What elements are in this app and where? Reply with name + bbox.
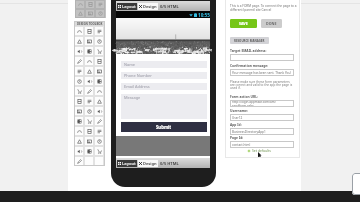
button[interactable]: Set defaults bbox=[247, 148, 271, 153]
button[interactable]: DONE bbox=[261, 19, 282, 28]
staticText: Target EMAIL address: bbox=[230, 48, 267, 52]
button[interactable]: tool 4 bbox=[84, 36, 94, 46]
button[interactable]: tool 9 bbox=[74, 56, 84, 66]
button[interactable]: tool 22 bbox=[84, 96, 94, 106]
button[interactable]: tool 5 bbox=[94, 36, 104, 46]
button[interactable]: tool 36 bbox=[74, 146, 84, 156]
button[interactable]: tool 32 bbox=[94, 126, 104, 136]
staticText: Username: bbox=[230, 108, 248, 112]
button[interactable]: tool 31 bbox=[84, 126, 94, 136]
staticText: Name bbox=[124, 62, 135, 67]
button[interactable]: tool bbox=[85, 9, 95, 18]
button[interactable]: tool 17 bbox=[94, 76, 104, 86]
button[interactable]: tool 35 bbox=[94, 136, 104, 146]
staticText: DESIGN TOOLBOX bbox=[77, 22, 103, 26]
staticText: Message bbox=[124, 95, 141, 100]
button[interactable] bbox=[230, 54, 294, 61]
staticText: Form action URL: bbox=[230, 94, 258, 98]
button[interactable]: tool 1 bbox=[84, 26, 94, 36]
button[interactable]: tool 41 bbox=[94, 156, 104, 166]
button[interactable]: Your message has been sent. Thank You! bbox=[230, 69, 294, 76]
button[interactable]: tool 33 bbox=[74, 136, 84, 146]
staticText: Layout bbox=[122, 4, 136, 9]
button[interactable]: SAVE bbox=[230, 19, 257, 28]
button[interactable]: tool bbox=[95, 0, 105, 9]
staticText: 0/5 HTML bbox=[160, 4, 179, 9]
button[interactable]: tool 3 bbox=[74, 36, 84, 46]
button[interactable]: RESOURCE MANAGER bbox=[230, 37, 269, 44]
button[interactable]: tool 24 bbox=[74, 106, 84, 116]
button[interactable]: tool 16 bbox=[84, 76, 94, 86]
staticText: Layout bbox=[122, 161, 136, 166]
button[interactable]: User12 bbox=[230, 114, 294, 121]
staticText: DONE bbox=[266, 21, 277, 26]
button[interactable]: tool 40 bbox=[84, 156, 94, 166]
button[interactable]: tool 25 bbox=[84, 106, 94, 116]
staticText: Confirmation message: bbox=[230, 63, 269, 67]
staticText: BusinessDirectoryApp1 bbox=[232, 130, 266, 134]
button[interactable]: tool 38 bbox=[94, 146, 104, 156]
button[interactable]: tool 20 bbox=[94, 86, 104, 96]
button[interactable]: Submit bbox=[121, 122, 207, 132]
button[interactable]: tool 26 bbox=[94, 106, 104, 116]
staticText: SAVE bbox=[239, 21, 248, 26]
button[interactable]: tool 12 bbox=[74, 66, 84, 76]
button[interactable]: BusinessDirectoryApp1 bbox=[230, 128, 294, 135]
button[interactable]: tool 13 bbox=[84, 66, 94, 76]
button[interactable]: tool 37 bbox=[84, 146, 94, 156]
button[interactable]: tool 10 bbox=[84, 56, 94, 66]
button[interactable]: tool 29 bbox=[94, 116, 104, 126]
button[interactable]: tool 27 bbox=[74, 116, 84, 126]
staticText: RESOURCE MANAGER bbox=[234, 39, 265, 43]
button[interactable]: tool bbox=[85, 0, 95, 9]
button[interactable]: tool bbox=[75, 9, 85, 18]
staticText: Page Id: bbox=[230, 135, 244, 139]
staticText: 0/5 HTML bbox=[160, 161, 179, 166]
staticText: Phone Number bbox=[124, 73, 152, 78]
staticText: Please make sure these form parameters a… bbox=[230, 80, 300, 90]
button[interactable]: tool 30 bbox=[74, 126, 84, 136]
staticText: User12 bbox=[232, 116, 243, 120]
staticText: Submit bbox=[156, 124, 172, 130]
button[interactable]: Email Address bbox=[121, 83, 207, 90]
button[interactable]: Phone Number bbox=[121, 72, 207, 79]
button[interactable]: tool 14 bbox=[94, 66, 104, 76]
button[interactable]: 0/5 HTML bbox=[160, 160, 179, 167]
button[interactable]: Layout bbox=[118, 3, 136, 10]
staticText: Your message has been sent. Thank You! bbox=[232, 71, 292, 75]
staticText: 10:55 bbox=[198, 12, 210, 18]
button[interactable]: Name bbox=[121, 61, 207, 68]
button[interactable]: tool 28 bbox=[84, 116, 94, 126]
button[interactable]: tool 0 bbox=[74, 26, 84, 36]
staticText: Design bbox=[143, 4, 157, 9]
staticText: App Id: bbox=[230, 122, 242, 126]
button[interactable]: tool 11 bbox=[94, 56, 104, 66]
button[interactable]: tool 39 bbox=[74, 156, 84, 166]
staticText: contact.html bbox=[232, 143, 251, 147]
button[interactable]: http://login.appmakr.com/am/sendform.ash… bbox=[230, 100, 294, 107]
button[interactable]: tool 15 bbox=[74, 76, 84, 86]
button[interactable]: 0/5 HTML bbox=[160, 3, 179, 10]
button[interactable]: tool 8 bbox=[94, 46, 104, 56]
button[interactable]: tool 23 bbox=[94, 96, 104, 106]
button[interactable]: Design bbox=[139, 160, 157, 167]
button[interactable]: tool bbox=[75, 0, 85, 9]
staticText: This is a FORM page. To connect the page… bbox=[230, 4, 300, 11]
button[interactable]: tool 21 bbox=[74, 96, 84, 106]
button[interactable]: tool 18 bbox=[74, 86, 84, 96]
button[interactable]: Layout bbox=[118, 160, 136, 167]
button[interactable]: Design bbox=[139, 3, 157, 10]
button[interactable]: tool 19 bbox=[84, 86, 94, 96]
button[interactable]: tool 7 bbox=[84, 46, 94, 56]
staticText: http://login.appmakr.com/am/sendform.ash… bbox=[232, 100, 294, 107]
staticText: Set defaults bbox=[252, 148, 271, 153]
staticText: Design bbox=[143, 161, 157, 166]
button[interactable]: contact.html bbox=[230, 141, 294, 148]
button[interactable]: tool 6 bbox=[74, 46, 84, 56]
staticText: Email Address bbox=[124, 84, 150, 89]
button[interactable]: tool 34 bbox=[84, 136, 94, 146]
button[interactable]: tool 2 bbox=[94, 26, 104, 36]
button[interactable]: tool bbox=[95, 9, 105, 18]
button[interactable]: Message bbox=[121, 94, 207, 119]
